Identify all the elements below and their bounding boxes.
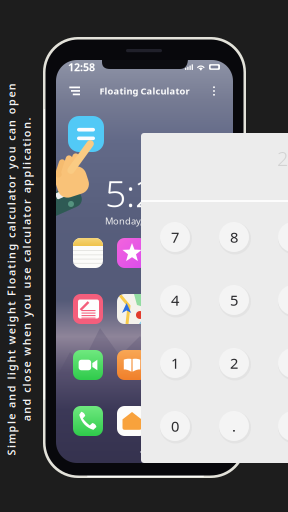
staticText: . xyxy=(232,416,236,436)
staticText: Monday, January 11 xyxy=(105,215,191,227)
button[interactable]: More options xyxy=(201,78,227,104)
staticText: Floating Calculator xyxy=(99,85,189,97)
button[interactable]: . xyxy=(219,411,249,441)
staticText: 4 xyxy=(171,290,179,310)
staticText: 2 xyxy=(230,353,238,373)
button[interactable]: News xyxy=(73,294,103,324)
staticText: 1 xyxy=(171,353,179,373)
button[interactable]: 7 xyxy=(160,222,190,252)
button[interactable]: 5 xyxy=(219,285,249,315)
button[interactable]: Open floating calculator xyxy=(68,116,104,152)
button[interactable]: Menu xyxy=(62,78,88,104)
button[interactable]: Home xyxy=(117,406,147,436)
button[interactable]: 8 xyxy=(219,222,249,252)
button[interactable]: Notes xyxy=(73,238,103,268)
button[interactable]: 2 xyxy=(219,348,249,378)
button[interactable]: 4 xyxy=(160,285,190,315)
button[interactable]: 6 xyxy=(278,285,288,315)
button[interactable]: = xyxy=(278,411,288,441)
staticText: 7 xyxy=(171,227,179,247)
button[interactable]: FaceTime xyxy=(73,350,103,380)
staticText: 8 xyxy=(230,227,238,247)
button[interactable]: iTunes Store xyxy=(117,238,147,268)
button[interactable]: 1 xyxy=(160,348,190,378)
button[interactable]: Books xyxy=(117,350,147,380)
staticText: 5:28 xyxy=(105,168,177,218)
button[interactable]: 3 xyxy=(278,348,288,378)
button[interactable]: Phone xyxy=(73,406,103,436)
staticText: 12:58 xyxy=(68,60,95,74)
button[interactable]: 0 xyxy=(160,411,190,441)
staticText: 5 xyxy=(230,290,238,310)
staticText: 0 xyxy=(171,416,179,436)
button[interactable]: Back xyxy=(132,438,156,466)
button[interactable]: 9 xyxy=(278,222,288,252)
button[interactable]: Maps xyxy=(117,294,147,324)
staticText: Simple and light weight Floating calcula… xyxy=(0,255,205,285)
staticText: 24 xyxy=(277,145,288,172)
